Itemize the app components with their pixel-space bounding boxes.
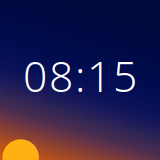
- staticText: 08:15: [23, 47, 137, 104]
